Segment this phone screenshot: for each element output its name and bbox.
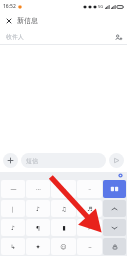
button[interactable]: Switch keyboard — [103, 180, 126, 198]
button[interactable]: ｜ — [1, 200, 25, 217]
button[interactable]: ♯ — [77, 219, 102, 236]
button[interactable]: Close — [3, 15, 15, 27]
button[interactable]: ♪ — [1, 219, 25, 236]
button[interactable]: 短信 — [21, 153, 106, 168]
staticText: ¶ — [36, 224, 40, 232]
staticText: ﹣ — [87, 185, 93, 193]
staticText: ♬ — [87, 205, 93, 212]
staticText: ☺ — [60, 243, 67, 250]
button[interactable]: — — [1, 180, 25, 198]
staticText: ▮ — [62, 224, 66, 231]
staticText: 16:52 — [3, 3, 16, 10]
staticText: ♪ — [36, 205, 40, 212]
staticText: — — [10, 185, 17, 193]
staticText: ♫ — [61, 205, 67, 212]
button[interactable]: 收件人 — [0, 29, 127, 44]
staticText: ～ — [61, 185, 67, 193]
button[interactable]: Add attachment — [3, 153, 18, 168]
staticText: 5G — [98, 4, 104, 9]
button[interactable]: ♬ — [77, 200, 102, 217]
button[interactable]: ～ — [51, 180, 76, 198]
button[interactable]: Add contact — [112, 31, 124, 43]
button[interactable]: ··· — [26, 180, 50, 198]
staticText: ✦ — [35, 243, 41, 250]
button[interactable]: ~ — [77, 238, 102, 255]
staticText: ~ — [88, 243, 92, 251]
staticText: 短信 — [26, 157, 38, 165]
button[interactable]: Next page — [103, 219, 126, 236]
button[interactable]: ↳ — [1, 238, 25, 255]
staticText: ··· — [36, 185, 41, 193]
staticText: ｜ — [10, 205, 16, 213]
staticText: 收件人 — [6, 33, 24, 41]
button[interactable]: Keyboard settings — [118, 173, 123, 178]
staticText: ♪ — [11, 224, 15, 231]
button[interactable]: ▮ — [51, 219, 76, 236]
button[interactable]: Send — [109, 153, 124, 168]
button[interactable]: ¶ — [26, 219, 50, 236]
staticText: ↳ — [10, 243, 16, 250]
button[interactable]: Lock — [103, 238, 126, 255]
button[interactable]: ☺ — [51, 238, 76, 255]
button[interactable]: Previous page — [103, 200, 126, 217]
button[interactable]: ﹣ — [77, 180, 102, 198]
button[interactable]: ♪ — [26, 200, 50, 217]
button[interactable]: ✦ — [26, 238, 50, 255]
staticText: ♯ — [88, 224, 91, 231]
staticText: 新信息 — [17, 16, 38, 25]
button[interactable]: ♫ — [51, 200, 76, 217]
